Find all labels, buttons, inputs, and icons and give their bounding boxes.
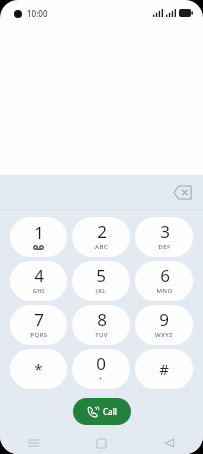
staticText: 7	[34, 308, 44, 331]
staticText: 1	[34, 221, 44, 244]
button[interactable]: 8	[72, 305, 130, 345]
button[interactable]: *	[10, 349, 67, 389]
staticText: 5	[96, 264, 106, 287]
button[interactable]: 9	[135, 305, 193, 345]
staticText: 2	[97, 220, 107, 243]
button[interactable]: #	[135, 349, 193, 389]
staticText: 9	[159, 308, 169, 331]
button[interactable]: 0	[72, 349, 130, 389]
button[interactable]: 6	[135, 261, 193, 301]
button[interactable]: 1	[10, 217, 67, 257]
staticText: 6	[160, 264, 170, 287]
button[interactable]: Backspace	[169, 179, 195, 205]
button[interactable]: 7	[10, 305, 67, 345]
staticText: #	[159, 359, 169, 379]
staticText: *	[34, 359, 43, 379]
button[interactable]: 2	[72, 217, 130, 257]
button[interactable]: Back	[135, 432, 203, 454]
button[interactable]: Recents	[0, 432, 67, 454]
staticText: 4	[34, 264, 44, 287]
staticText: 3	[160, 220, 170, 243]
staticText: 8	[97, 308, 107, 331]
button[interactable]: 3	[135, 217, 193, 257]
staticText: 10:00	[27, 8, 48, 19]
button[interactable]: 4	[10, 261, 67, 301]
staticText: MNO	[156, 287, 173, 295]
staticText: +	[99, 375, 103, 383]
staticText: PQRS	[30, 331, 48, 339]
staticText: JKL	[96, 287, 106, 295]
staticText: 0	[96, 352, 106, 375]
button[interactable]: Call	[73, 398, 131, 425]
staticText: WXYZ	[155, 331, 173, 339]
staticText: Call	[103, 406, 117, 417]
staticText: DEF	[158, 243, 171, 251]
staticText: TUV	[95, 331, 108, 339]
button[interactable]: Home	[67, 432, 135, 454]
staticText: GHI	[32, 287, 45, 295]
staticText: ABC	[95, 243, 108, 251]
button[interactable]: 5	[72, 261, 130, 301]
